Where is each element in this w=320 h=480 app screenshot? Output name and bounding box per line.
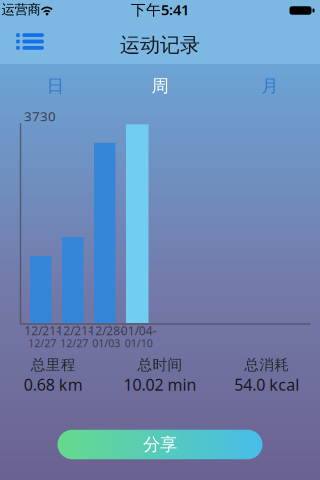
staticText: 运营商 [1, 1, 40, 18]
button[interactable]: 菜单 [8, 19, 52, 63]
staticText: 总时间 [137, 356, 182, 374]
staticText: 01/04- [121, 322, 157, 338]
button[interactable]: 月 [213, 68, 320, 104]
button[interactable]: 日 [0, 68, 107, 104]
staticText: 运动记录 [120, 33, 200, 57]
staticText: 01/03 [92, 336, 120, 350]
staticText: 日 [47, 75, 64, 97]
button[interactable]: 分享 [57, 430, 262, 459]
staticText: 下午5:41 [131, 0, 189, 19]
staticText: 10.02 min [123, 374, 196, 395]
staticText: 3730 [24, 107, 56, 125]
staticText: 54.0 kcal [234, 374, 299, 395]
staticText: 12/21- [56, 322, 92, 338]
staticText: 12/27 [60, 336, 88, 350]
staticText: 12/27 [28, 336, 56, 350]
staticText: 总消耗 [244, 356, 289, 374]
staticText: 01/10 [125, 336, 153, 350]
button[interactable]: 周 [107, 68, 213, 104]
staticText: 周 [151, 75, 168, 97]
staticText: 分享 [143, 434, 177, 455]
staticText: 12/21- [24, 322, 60, 338]
staticText: 0.68 km [24, 374, 83, 395]
staticText: 月 [261, 75, 278, 97]
staticText: 12/28- [88, 322, 124, 338]
staticText: 总里程 [31, 356, 76, 374]
